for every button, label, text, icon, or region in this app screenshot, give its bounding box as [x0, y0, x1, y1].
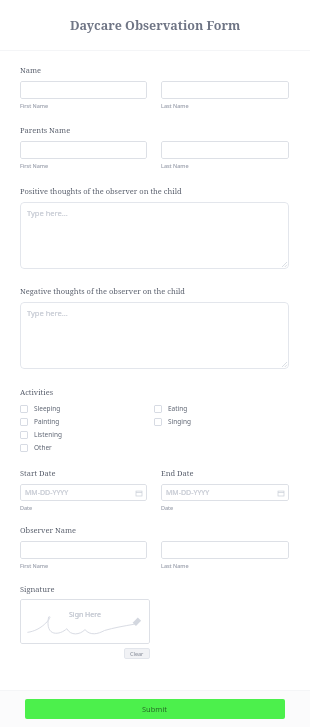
staticText: First Name — [20, 102, 49, 109]
staticText: End Date — [161, 468, 194, 478]
staticText: Type here... — [27, 308, 68, 318]
button[interactable]: Singing — [154, 415, 289, 428]
button[interactable] — [20, 541, 147, 559]
button[interactable]: Clear — [124, 648, 150, 659]
button[interactable] — [20, 81, 147, 99]
staticText: Listening — [34, 430, 62, 439]
other: Pick date — [278, 490, 284, 496]
staticText: Positive thoughts of the observer on the… — [20, 186, 182, 196]
staticText: MM-DD-YYYY — [25, 488, 69, 498]
button[interactable]: Painting — [20, 415, 154, 428]
staticText: Daycare Observation Form — [70, 17, 241, 34]
staticText: Start Date — [20, 468, 56, 478]
staticText: Sign Here — [69, 610, 101, 620]
button[interactable]: Sleeping — [20, 402, 154, 415]
staticText: Singing — [168, 417, 191, 426]
staticText: Painting — [34, 417, 60, 426]
staticText: Last Name — [161, 562, 189, 569]
staticText: Last Name — [161, 162, 189, 169]
staticText: Parents Name — [20, 125, 71, 135]
staticText: Observer Name — [20, 525, 76, 535]
button[interactable] — [161, 81, 289, 99]
staticText: Sleeping — [34, 404, 61, 413]
staticText: Clear — [130, 650, 144, 657]
button[interactable]: Type here... — [20, 302, 289, 369]
button[interactable]: Sign Here — [20, 599, 150, 644]
staticText: First Name — [20, 162, 49, 169]
button[interactable]: MM-DD-YYYY — [20, 484, 147, 501]
button[interactable]: Eating — [154, 402, 289, 415]
staticText: Name — [20, 65, 42, 75]
staticText: Submit — [142, 704, 168, 714]
other: Pick date — [136, 490, 142, 496]
button[interactable]: Listening — [20, 428, 154, 441]
staticText: Negative thoughts of the observer on the… — [20, 286, 185, 296]
staticText: Other — [34, 443, 52, 452]
button[interactable]: Other — [20, 441, 154, 454]
staticText: Last Name — [161, 102, 189, 109]
button[interactable]: MM-DD-YYYY — [161, 484, 289, 501]
staticText: Date — [161, 504, 174, 511]
staticText: Date — [20, 504, 33, 511]
button[interactable] — [161, 141, 289, 159]
button[interactable]: Submit — [25, 699, 285, 719]
staticText: Signature — [20, 584, 55, 594]
staticText: Eating — [168, 404, 188, 413]
staticText: MM-DD-YYYY — [166, 488, 210, 498]
button[interactable]: Type here... — [20, 202, 289, 269]
button[interactable] — [161, 541, 289, 559]
staticText: First Name — [20, 562, 49, 569]
button[interactable] — [20, 141, 147, 159]
staticText: Activities — [20, 387, 54, 397]
staticText: Type here... — [27, 208, 68, 218]
